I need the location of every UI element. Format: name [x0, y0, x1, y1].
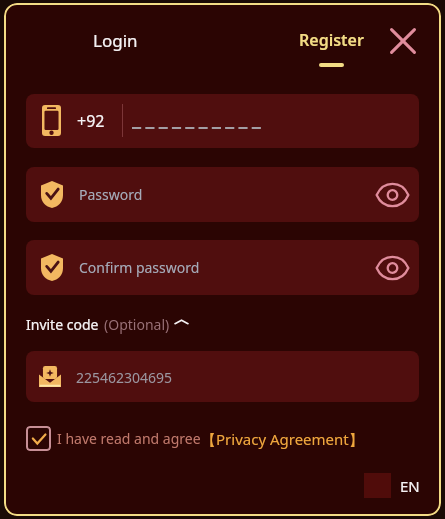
button[interactable]: Password: [26, 167, 419, 222]
button[interactable]: EN: [362, 471, 422, 500]
button[interactable]: Show password: [374, 177, 410, 213]
staticText: EN: [400, 476, 420, 496]
button[interactable]: +92: [26, 94, 419, 148]
staticText: Register: [299, 29, 364, 51]
button[interactable]: 225462304695: [26, 351, 419, 402]
button[interactable]: Close: [385, 23, 420, 58]
staticText: I have read and agree: [57, 429, 201, 448]
staticText: Confirm password: [79, 258, 200, 277]
button[interactable]: Register: [289, 24, 374, 72]
button[interactable]: I have read and agree: [24, 424, 366, 453]
button[interactable]: Confirm password: [26, 240, 419, 295]
staticText: 【Privacy Agreement】: [201, 429, 364, 449]
staticText: Login: [93, 29, 138, 52]
button[interactable]: Show password: [374, 250, 410, 286]
button[interactable]: Invite code: [22, 312, 192, 337]
staticText: (Optional): [104, 315, 170, 334]
staticText: +92: [77, 110, 105, 132]
staticText: Invite code: [26, 315, 99, 334]
button[interactable]: Login: [83, 24, 148, 57]
staticText: 225462304695: [76, 368, 173, 387]
staticText: Password: [79, 185, 143, 204]
